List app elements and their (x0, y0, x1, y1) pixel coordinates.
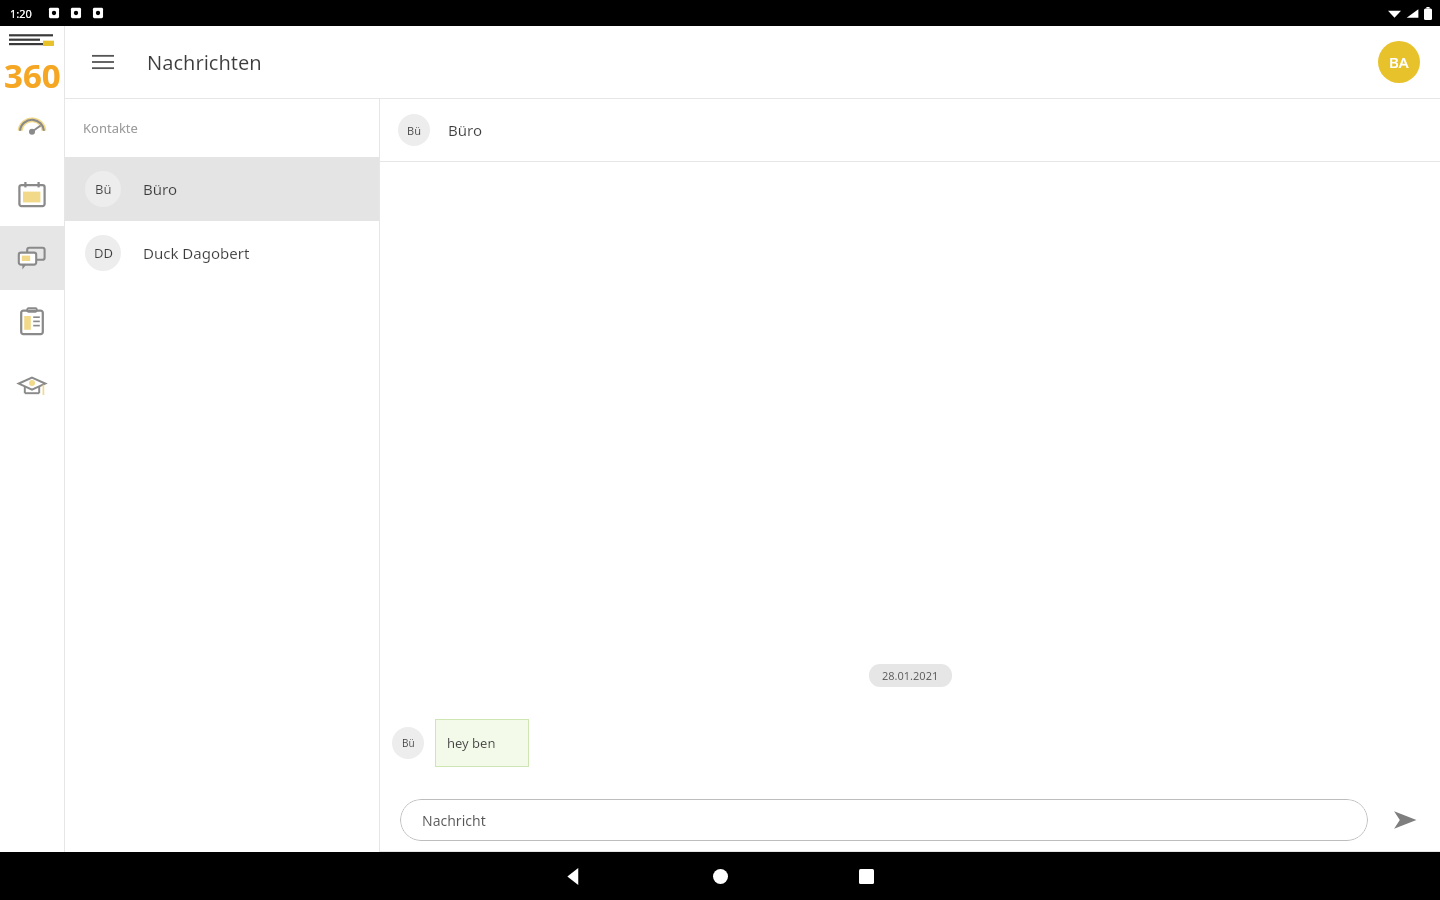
staticText: Bü (407, 123, 421, 138)
staticText: 28.01.2021 (882, 668, 939, 683)
button[interactable]: Übersicht (842, 852, 890, 900)
staticText: Büro (448, 120, 482, 140)
staticText: Duck Dagobert (143, 243, 250, 263)
staticText: DD (94, 244, 113, 262)
button[interactable]: Bü (65, 157, 379, 221)
staticText: BA (1389, 52, 1409, 72)
staticText: Bü (402, 736, 415, 750)
button[interactable]: Kalender (0, 162, 64, 226)
button[interactable]: Senden (1384, 799, 1426, 841)
button[interactable]: Profil BA (1378, 41, 1420, 83)
staticText: hey ben (447, 734, 496, 752)
button[interactable]: DD (65, 221, 379, 285)
staticText: Büro (143, 179, 177, 199)
button[interactable]: Lernen (0, 354, 64, 418)
button[interactable]: Dashboard (0, 98, 64, 162)
button[interactable]: Menü (81, 40, 125, 84)
staticText: Nachrichten (147, 49, 262, 76)
staticText: 360 (4, 53, 61, 93)
button[interactable]: Nachrichten (0, 226, 64, 290)
button[interactable]: Nachricht (400, 799, 1368, 841)
button[interactable]: Zurück (550, 852, 598, 900)
staticText: Bü (95, 180, 112, 198)
staticText: Nachricht (422, 811, 486, 830)
button[interactable]: Aufgaben (0, 290, 64, 354)
staticText: Kontakte (83, 119, 138, 137)
staticText: 1:20 (10, 6, 32, 21)
button[interactable]: Startseite (696, 852, 744, 900)
